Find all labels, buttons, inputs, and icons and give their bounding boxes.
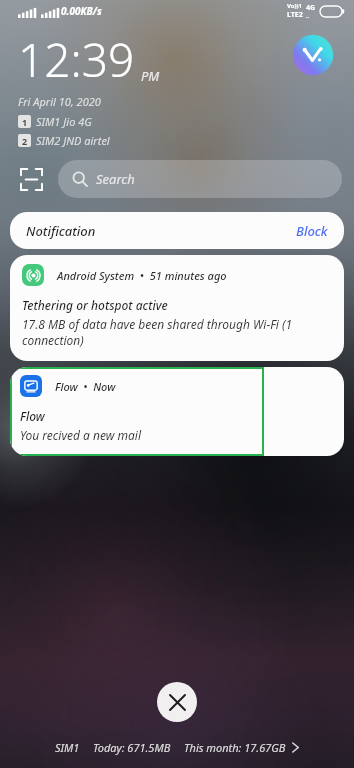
staticText: 0.00KB/s bbox=[61, 4, 102, 18]
button[interactable]: SIM1 bbox=[0, 740, 354, 755]
staticText: Flow bbox=[20, 408, 45, 424]
button[interactable]: Block bbox=[296, 222, 328, 240]
staticText: LTE2 bbox=[287, 10, 303, 20]
button[interactable]: Search bbox=[58, 160, 342, 198]
staticText: Block bbox=[296, 222, 328, 240]
staticText: This month: 17.67GB bbox=[184, 740, 286, 755]
staticText: Search bbox=[96, 170, 135, 188]
staticText: 12:39 bbox=[18, 28, 135, 91]
staticText: 17.8 MB of data have been shared through… bbox=[22, 316, 330, 348]
staticText: Today: 671.5MB bbox=[93, 740, 171, 755]
staticText: PM bbox=[141, 67, 160, 85]
staticText: Notification bbox=[26, 222, 96, 240]
button[interactable]: App shortcut bbox=[290, 32, 336, 78]
staticText: You recived a new mail bbox=[20, 427, 141, 443]
button[interactable]: Android System • 51 minutes ago bbox=[10, 255, 344, 361]
button[interactable]: Flow • Now bbox=[10, 367, 344, 456]
staticText: Tethering or hotspot active bbox=[22, 297, 168, 313]
staticText: Android System • 51 minutes ago bbox=[57, 268, 227, 283]
staticText: .. bbox=[306, 13, 309, 20]
staticText: Fri April 10, 2020 bbox=[18, 94, 101, 109]
staticText: Flow • Now bbox=[55, 379, 116, 394]
staticText: SIM1 Jio 4G bbox=[36, 114, 92, 129]
button[interactable]: Close notification shade bbox=[157, 682, 197, 722]
staticText: Vo))1 bbox=[287, 2, 303, 10]
button[interactable]: Notification bbox=[10, 212, 344, 249]
staticText: 2 bbox=[22, 135, 28, 147]
staticText: 1 bbox=[22, 116, 28, 128]
button[interactable]: Scan QR code bbox=[14, 162, 48, 196]
staticText: SIM2 JND airtel bbox=[36, 133, 110, 148]
staticText: 4G bbox=[306, 3, 316, 13]
staticText: SIM1 bbox=[55, 740, 80, 755]
